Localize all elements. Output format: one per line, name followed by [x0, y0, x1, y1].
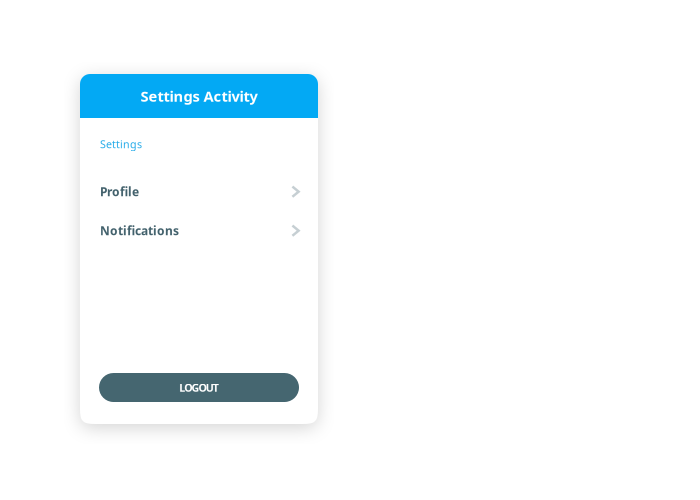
button[interactable]: Profile: [80, 172, 318, 211]
button[interactable]: LOGOUT: [99, 373, 299, 402]
staticText: Settings Activity: [140, 86, 257, 106]
staticText: Profile: [100, 184, 139, 200]
staticText: Settings: [100, 137, 142, 151]
staticText: LOGOUT: [179, 380, 219, 395]
staticText: Notifications: [100, 223, 179, 239]
button[interactable]: Notifications: [80, 211, 318, 250]
